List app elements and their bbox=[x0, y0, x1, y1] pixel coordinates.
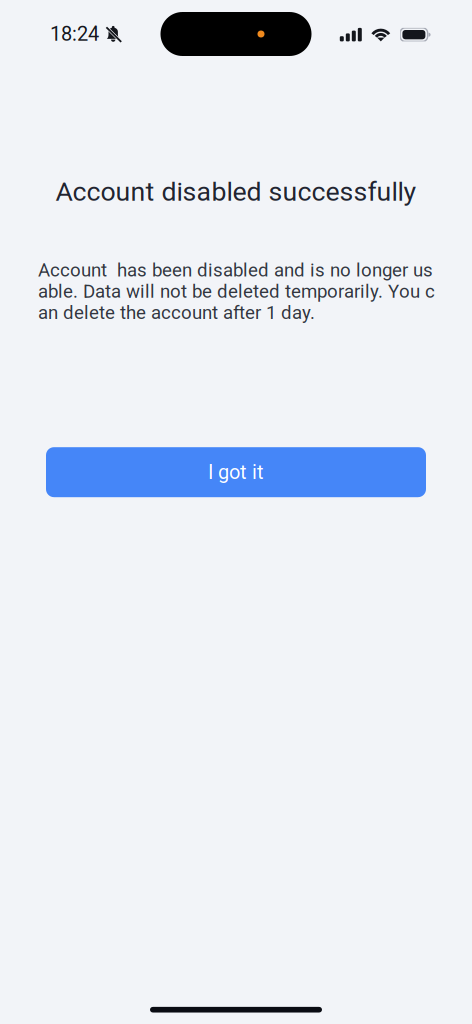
staticText: able. Data will not be deleted temporari… bbox=[38, 280, 435, 302]
button[interactable]: I got it bbox=[46, 447, 426, 497]
staticText: I got it bbox=[208, 460, 264, 484]
staticText: 18:24 bbox=[50, 22, 99, 46]
staticText: an delete the account after 1 day. bbox=[38, 302, 315, 324]
staticText: Account disabled successfully bbox=[55, 176, 416, 207]
staticText: Account has been disabled and is no long… bbox=[38, 259, 433, 281]
